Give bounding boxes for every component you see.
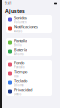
- staticText: Teclado: [14, 78, 27, 83]
- button[interactable]: Privacidad: [6, 87, 52, 96]
- button[interactable]: Pantalla: [6, 38, 52, 47]
- staticText: Batería: [14, 47, 27, 52]
- staticText: Notificaciones: [14, 24, 38, 29]
- button[interactable]: Tiempo: [6, 69, 52, 78]
- staticText: Brillo: [14, 43, 22, 47]
- staticText: Idioma: [14, 83, 23, 87]
- staticText: Privacidad: [14, 87, 32, 92]
- staticText: Volumen: [14, 20, 27, 24]
- staticText: Sonidos: [14, 15, 27, 20]
- staticText: Datos: [14, 92, 21, 96]
- staticText: Ajustes: [5, 7, 25, 15]
- staticText: Ahorro: [14, 52, 24, 56]
- button[interactable]: Batería: [6, 47, 52, 56]
- button[interactable]: Teclado: [6, 78, 52, 87]
- staticText: Uso: [14, 74, 19, 78]
- staticText: Avisos: [14, 29, 22, 33]
- staticText: 9:41: [5, 2, 12, 5]
- button[interactable]: Fondo: [6, 60, 52, 69]
- staticText: Pantalla: [14, 38, 27, 43]
- staticText: Tiempo: [14, 69, 27, 74]
- staticText: Fondo: [14, 60, 24, 65]
- button[interactable]: Sonidos: [6, 15, 52, 24]
- staticText: Pantalla: [14, 65, 24, 69]
- button[interactable]: Notificaciones: [6, 24, 52, 33]
